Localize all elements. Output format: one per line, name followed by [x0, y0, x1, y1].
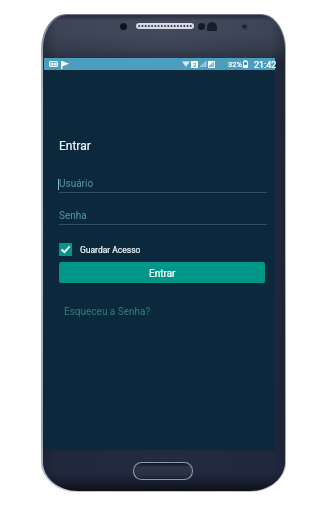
button[interactable]: Guardar Acesso	[59, 242, 141, 257]
button[interactable]: Esqueceu a Senha?	[64, 306, 151, 318]
staticText: 2	[193, 61, 197, 68]
button[interactable]: Home	[134, 463, 192, 479]
staticText: 21:42	[254, 60, 277, 71]
staticText: Senha	[59, 210, 87, 222]
staticText: 32%	[228, 60, 242, 69]
staticText: Entrar	[149, 268, 176, 280]
staticText: Usuário	[59, 178, 94, 190]
button[interactable]: Entrar	[59, 262, 265, 283]
staticText: Entrar	[59, 139, 91, 153]
staticText: Guardar Acesso	[80, 245, 141, 255]
